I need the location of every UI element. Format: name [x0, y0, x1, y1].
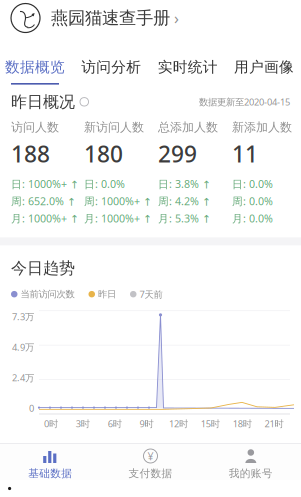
button[interactable]: 我的账号 — [201, 448, 301, 480]
staticText: 周: 0.0% — [232, 194, 273, 208]
staticText: 今日趋势 — [11, 258, 75, 278]
staticText: 6时 — [108, 417, 122, 430]
staticText: 3时 — [76, 417, 90, 430]
staticText: › — [174, 7, 179, 29]
staticText: 18时 — [233, 417, 252, 430]
staticText: 0时 — [44, 417, 58, 430]
staticText: 0 — [29, 402, 34, 414]
button[interactable]: 访问分析 — [81, 58, 141, 85]
staticText: 月: 1000%+ ↑ — [84, 211, 152, 225]
staticText: 当前访问次数 — [20, 288, 74, 300]
staticText: 周: 1000%+ ↑ — [84, 194, 152, 208]
staticText: 299 — [158, 139, 197, 169]
button[interactable]: ¥ — [100, 448, 201, 480]
staticText: 访问分析 — [81, 58, 141, 76]
staticText: 4.9万 — [12, 341, 34, 353]
button[interactable]: 用户画像 — [234, 58, 294, 85]
staticText: 180 — [84, 139, 123, 169]
staticText: 新访问人数 — [84, 120, 144, 135]
staticText: 21时 — [265, 417, 284, 430]
button[interactable]: 数据概览 — [5, 58, 65, 85]
staticText: 燕园猫速查手册 — [51, 7, 170, 29]
staticText: 2.4万 — [12, 371, 34, 384]
staticText: 数据更新至2020-04-15 — [199, 96, 290, 108]
staticText: 日: 0.0% — [232, 177, 273, 191]
staticText: 188 — [11, 139, 50, 169]
staticText: 实时统计 — [158, 58, 218, 76]
staticText: 15时 — [201, 417, 220, 430]
staticText: 月: 0.0% — [232, 211, 273, 225]
staticText: ¥ — [147, 449, 153, 463]
staticText: 月: 1000%+ ↑ — [11, 211, 79, 225]
staticText: 日: 0.0% — [84, 177, 125, 191]
button[interactable]: 基础数据 — [0, 448, 100, 480]
staticText: 新添加人数 — [232, 120, 292, 135]
staticText: 数据概览 — [5, 58, 65, 76]
staticText: 用户画像 — [234, 58, 294, 76]
staticText: 基础数据 — [28, 467, 72, 480]
staticText: 访问人数 — [11, 120, 59, 135]
staticText: 日: 3.8% ↑ — [158, 177, 211, 191]
staticText: 日: 1000%+ ↑ — [11, 177, 79, 191]
staticText: 12时 — [169, 417, 188, 430]
button[interactable]: 实时统计 — [158, 58, 218, 85]
staticText: 11 — [232, 139, 258, 169]
staticText: 7天前 — [139, 288, 162, 300]
staticText: 支付数据 — [128, 467, 172, 480]
button[interactable]: 燕园猫速查手册 — [0, 0, 301, 36]
staticText: 昨日概况 — [11, 92, 75, 112]
staticText: 周: 4.2% ↑ — [158, 194, 211, 208]
staticText: 我的账号 — [229, 467, 273, 480]
staticText: 9时 — [140, 417, 154, 430]
staticText: 月: 5.3% ↑ — [158, 211, 211, 225]
staticText: 7.3万 — [12, 310, 34, 323]
staticText: 总添加人数 — [158, 120, 218, 135]
staticText: 昨日 — [98, 288, 116, 300]
staticText: 周: 652.0% ↑ — [11, 194, 76, 208]
